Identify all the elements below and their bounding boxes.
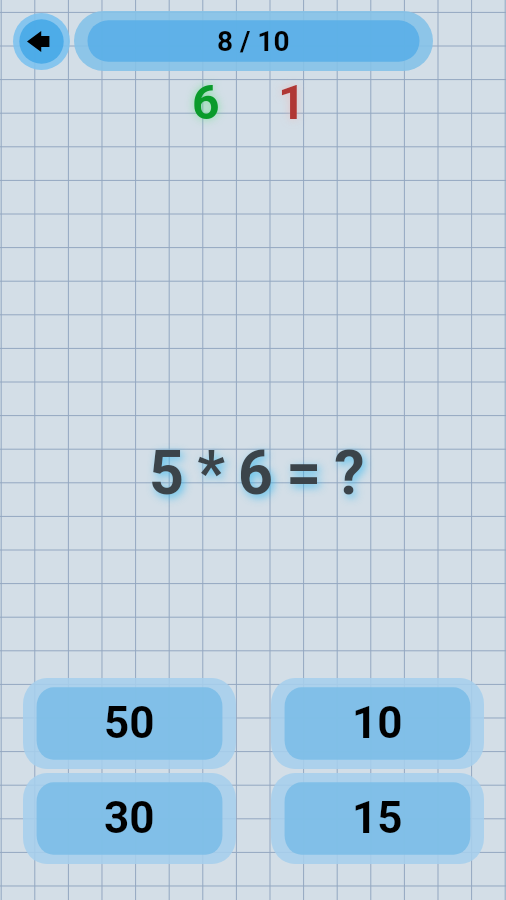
staticText: 8 / 10 (217, 25, 290, 58)
button[interactable]: Back (13, 13, 70, 70)
staticText: 15 (352, 792, 403, 844)
button[interactable]: 15 (271, 773, 484, 864)
button[interactable]: 10 (271, 678, 484, 769)
staticText: 1 (278, 74, 306, 130)
button[interactable]: 8 / 10 (74, 11, 433, 71)
staticText: 30 (104, 792, 155, 844)
staticText: 5 * 6 = ? (149, 437, 364, 508)
staticText: 50 (104, 697, 155, 749)
button[interactable]: 30 (23, 773, 236, 864)
button[interactable]: 50 (23, 678, 236, 769)
staticText: 6 (192, 74, 220, 130)
staticText: 10 (352, 697, 403, 749)
